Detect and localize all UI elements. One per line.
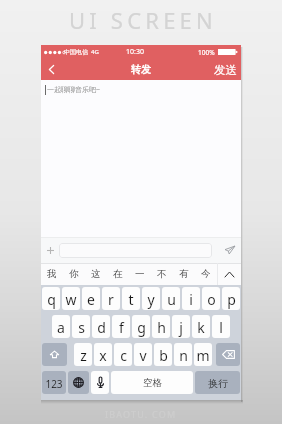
staticText: r — [108, 290, 114, 309]
staticText: n — [179, 346, 188, 365]
button[interactable] — [59, 243, 212, 258]
staticText: f — [119, 318, 124, 337]
staticText: k — [197, 318, 205, 337]
button[interactable]: n — [174, 343, 192, 366]
staticText: j — [179, 318, 183, 337]
staticText: 换行 — [208, 377, 228, 390]
button[interactable]: p — [222, 287, 240, 310]
staticText: 不 — [157, 268, 167, 280]
staticText: o — [207, 290, 216, 309]
staticText: 今 — [201, 268, 211, 280]
staticText: q — [47, 290, 56, 309]
button[interactable]: w — [62, 287, 80, 310]
button[interactable]: 在 — [107, 263, 129, 285]
staticText: 中国电信 4G — [64, 48, 99, 56]
button[interactable]: 不 — [151, 263, 173, 285]
button[interactable]: Voice input — [91, 371, 109, 394]
button[interactable]: q — [42, 287, 60, 310]
button[interactable]: f — [112, 315, 130, 338]
staticText: 100% — [198, 48, 215, 57]
staticText: z — [80, 346, 87, 365]
staticText: 10:30 — [126, 47, 144, 57]
button[interactable]: g — [132, 315, 150, 338]
button[interactable]: 我 — [41, 263, 63, 285]
staticText: i — [189, 290, 193, 309]
button[interactable]: 今 — [195, 263, 217, 285]
staticText: l — [219, 318, 223, 337]
button[interactable]: j — [172, 315, 190, 338]
button[interactable]: Back — [41, 59, 61, 80]
button[interactable]: 这 — [85, 263, 107, 285]
staticText: u — [167, 290, 176, 309]
button[interactable]: c — [114, 343, 132, 366]
staticText: d — [97, 318, 106, 337]
button[interactable]: z — [74, 343, 92, 366]
button[interactable]: l — [212, 315, 230, 338]
button[interactable]: 你 — [63, 263, 85, 285]
staticText: 有 — [179, 268, 189, 280]
staticText: y — [147, 290, 155, 309]
staticText: t — [128, 290, 134, 309]
button[interactable]: More candidates — [218, 263, 241, 285]
button[interactable]: 有 — [173, 263, 195, 285]
staticText: c — [120, 346, 127, 365]
staticText: 转发 — [131, 63, 151, 76]
button[interactable]: s — [72, 315, 90, 338]
button[interactable]: d — [92, 315, 110, 338]
staticText: a — [57, 318, 65, 337]
staticText: b — [159, 346, 168, 365]
button[interactable]: e — [82, 287, 100, 310]
staticText: v — [139, 346, 147, 365]
staticText: w — [65, 290, 77, 309]
button[interactable]: Send — [223, 243, 237, 257]
staticText: g — [137, 318, 146, 337]
button[interactable]: m — [194, 343, 212, 366]
staticText: 我 — [47, 268, 57, 280]
button[interactable]: o — [202, 287, 220, 310]
button[interactable]: h — [152, 315, 170, 338]
button[interactable]: b — [154, 343, 172, 366]
staticText: 123 — [45, 377, 63, 391]
button[interactable]: 空格 — [111, 371, 193, 394]
staticText: m — [196, 346, 210, 365]
button[interactable]: 123 — [42, 371, 66, 394]
staticText: 一 — [135, 268, 145, 280]
staticText: 在 — [113, 268, 123, 280]
button[interactable]: k — [192, 315, 210, 338]
button[interactable]: a — [52, 315, 70, 338]
button[interactable]: Shift — [42, 343, 67, 366]
button[interactable]: r — [102, 287, 120, 310]
button[interactable]: y — [142, 287, 160, 310]
staticText: 空格 — [143, 377, 162, 389]
button[interactable]: 发送 — [214, 59, 237, 80]
button[interactable]: i — [182, 287, 200, 310]
staticText: p — [227, 290, 236, 309]
staticText: 这 — [91, 268, 101, 280]
button[interactable]: Add — [44, 244, 56, 256]
button[interactable]: v — [134, 343, 152, 366]
staticText: 一起聊聊音乐吧~ — [47, 85, 101, 95]
button[interactable]: u — [162, 287, 180, 310]
button[interactable]: x — [94, 343, 112, 366]
button[interactable]: Switch language — [68, 371, 89, 394]
staticText: h — [157, 318, 166, 337]
staticText: 发送 — [214, 63, 237, 77]
staticText: 你 — [69, 268, 79, 280]
button[interactable]: t — [122, 287, 140, 310]
button[interactable]: 换行 — [195, 371, 240, 394]
staticText: UI SCREEN — [69, 5, 217, 35]
button[interactable]: 一 — [129, 263, 151, 285]
button[interactable]: Backspace — [216, 343, 240, 366]
staticText: s — [78, 318, 85, 337]
staticText: e — [87, 290, 95, 309]
staticText: x — [99, 346, 107, 365]
